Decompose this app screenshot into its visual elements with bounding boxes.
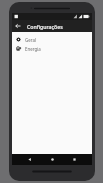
button[interactable]: Geral xyxy=(12,35,92,44)
staticText: Configurações xyxy=(27,23,63,30)
button[interactable]: Recent apps xyxy=(69,154,80,165)
button[interactable]: Energia xyxy=(12,44,92,53)
button[interactable]: Back xyxy=(24,154,35,165)
button[interactable]: Home xyxy=(47,154,58,165)
staticText: Geral xyxy=(25,37,36,43)
button[interactable]: Back xyxy=(12,20,24,32)
staticText: Energia xyxy=(25,46,41,52)
